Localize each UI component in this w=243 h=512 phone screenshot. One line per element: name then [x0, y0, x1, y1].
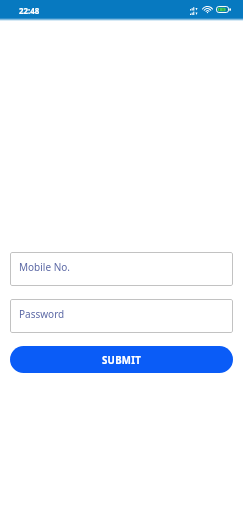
staticText: 22:48	[19, 6, 40, 17]
staticText: Mobile No.	[19, 260, 70, 274]
staticText: Password	[19, 307, 65, 321]
staticText: SUBMIT	[102, 354, 142, 367]
button[interactable]: Mobile No.	[10, 252, 233, 286]
other: Signal strength	[190, 7, 198, 15]
button[interactable]: Password	[10, 299, 233, 333]
other: Battery	[216, 6, 231, 13]
button[interactable]: SUBMIT	[10, 346, 233, 373]
other: Wi-Fi	[203, 6, 212, 13]
